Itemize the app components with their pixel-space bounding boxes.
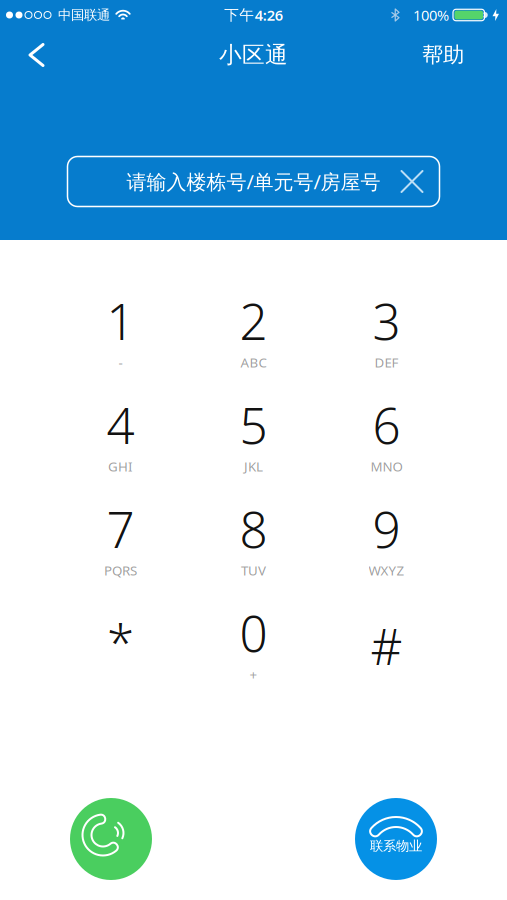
staticText: # xyxy=(370,613,402,679)
staticText: 小区通 xyxy=(219,41,288,69)
staticText: 9 xyxy=(372,496,400,561)
button[interactable]: * xyxy=(54,600,187,683)
button[interactable]: 联系物业 xyxy=(355,798,437,880)
button[interactable]: 请输入楼栋号/单元号/房屋号 xyxy=(67,156,439,206)
staticText: 0 xyxy=(239,600,267,666)
staticText: 4:26 xyxy=(255,5,283,25)
staticText: ABC xyxy=(240,353,266,371)
staticText: 联系物业 xyxy=(370,838,422,854)
staticText: 5 xyxy=(239,392,267,457)
button[interactable]: 8 xyxy=(187,496,320,579)
button[interactable]: 5 xyxy=(187,392,320,475)
staticText: GHI xyxy=(108,457,133,475)
staticText: - xyxy=(118,353,122,371)
button[interactable]: 9 xyxy=(320,496,453,579)
button[interactable]: 0 xyxy=(187,600,320,683)
button[interactable]: # xyxy=(320,600,453,683)
staticText: * xyxy=(107,609,134,675)
button[interactable]: 帮助 xyxy=(422,29,507,81)
button[interactable]: 清除 xyxy=(395,165,428,198)
staticText: WXYZ xyxy=(368,561,404,579)
staticText: 7 xyxy=(106,496,134,561)
button[interactable]: 4 xyxy=(54,392,187,475)
staticText: 帮助 xyxy=(422,42,464,68)
staticText: 4 xyxy=(106,392,134,457)
staticText: 1 xyxy=(106,288,134,353)
staticText: 3 xyxy=(372,288,400,353)
staticText: 中国联通 xyxy=(58,7,110,23)
button[interactable]: 3 xyxy=(320,288,453,371)
button[interactable]: 1 xyxy=(54,288,187,371)
staticText: 2 xyxy=(239,288,267,353)
staticText: 下午 xyxy=(224,6,254,24)
staticText: DEF xyxy=(374,353,398,371)
button[interactable]: 返回 xyxy=(0,31,43,78)
staticText: PQRS xyxy=(104,561,137,579)
staticText: 6 xyxy=(372,392,400,457)
staticText: + xyxy=(249,666,257,683)
button[interactable]: 2 xyxy=(187,288,320,371)
staticText: MNO xyxy=(370,457,402,475)
staticText: 100% xyxy=(413,5,449,25)
staticText: TUV xyxy=(241,561,266,579)
button[interactable]: 7 xyxy=(54,496,187,579)
button[interactable]: 6 xyxy=(320,392,453,475)
button[interactable]: 呼叫 xyxy=(70,798,152,880)
staticText: JKL xyxy=(244,457,263,475)
staticText: 请输入楼栋号/单元号/房屋号 xyxy=(126,168,380,195)
staticText: 8 xyxy=(239,496,267,561)
